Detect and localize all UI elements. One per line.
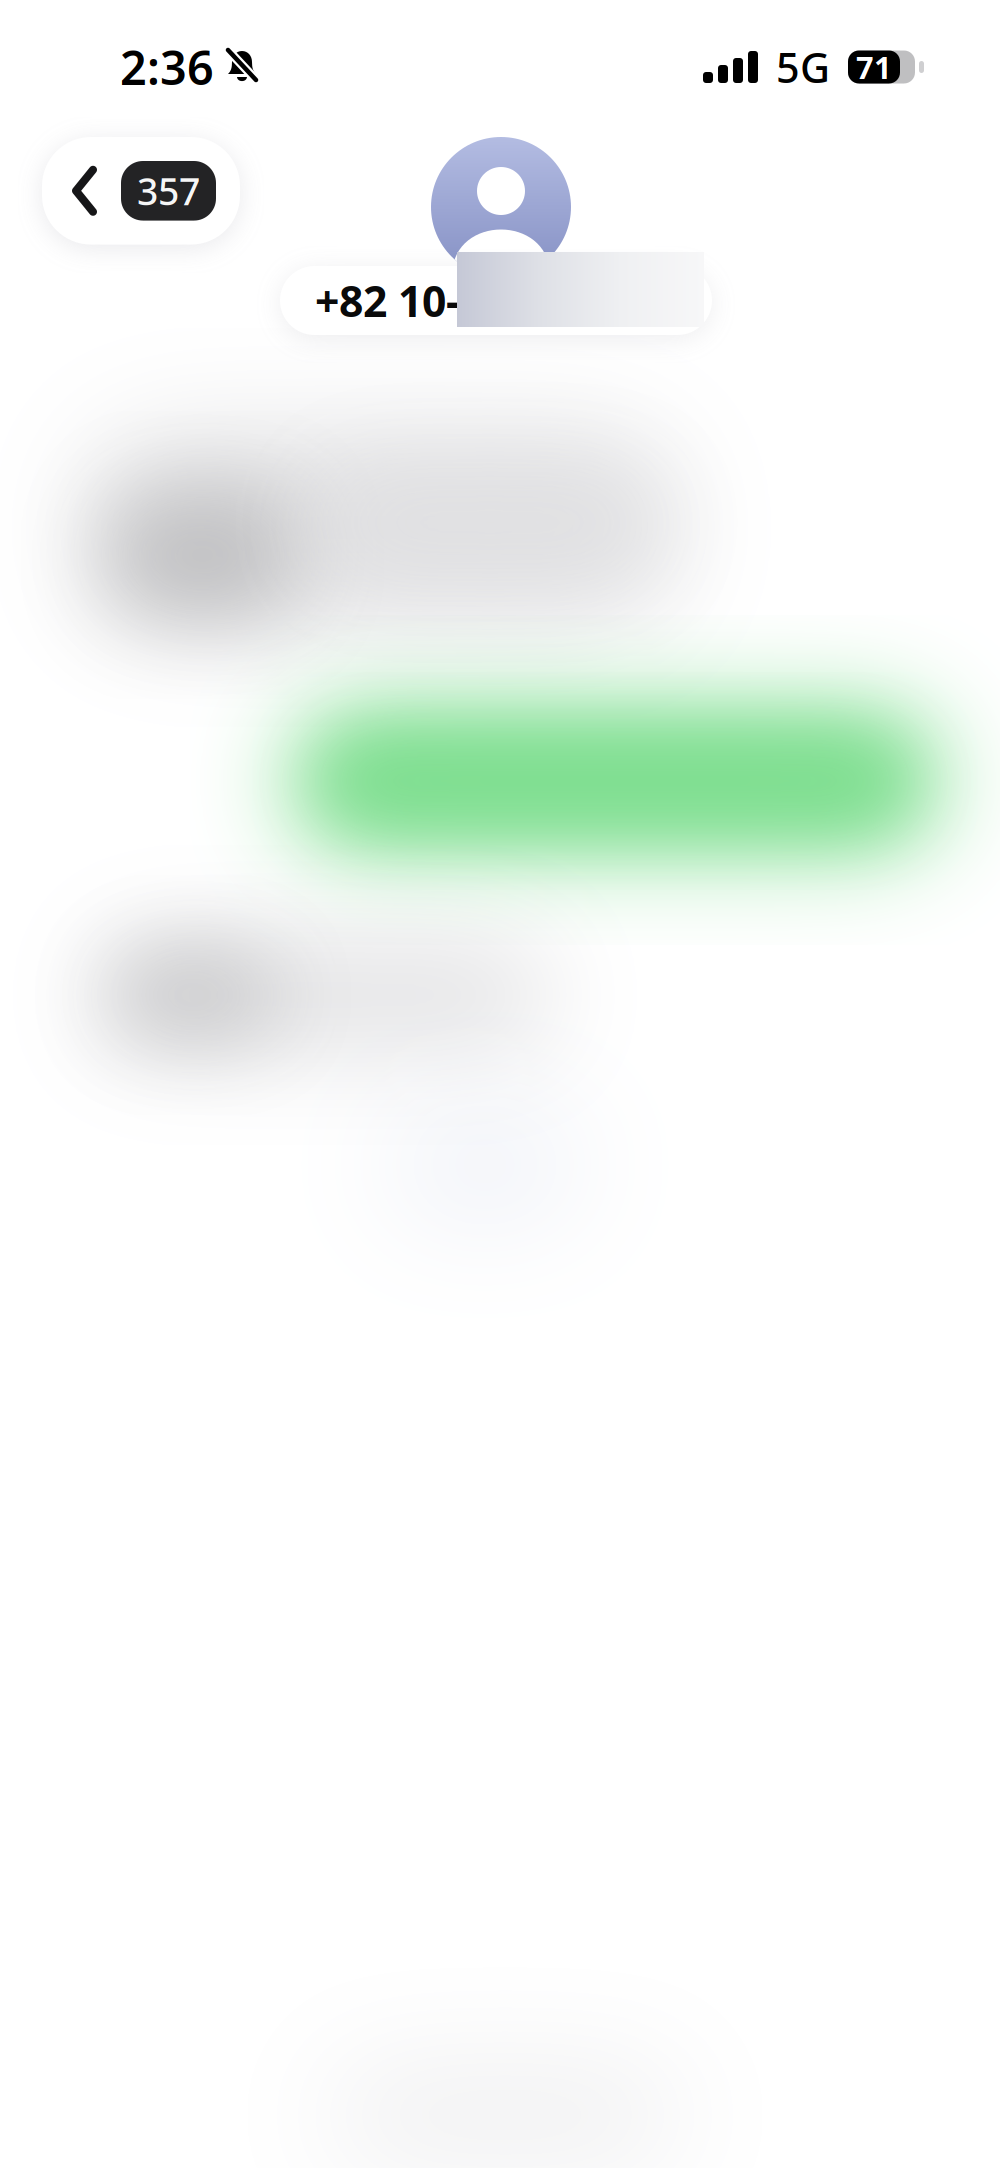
staticText: 2:36	[120, 36, 214, 98]
staticText: 71	[856, 47, 892, 87]
staticText: 5G	[776, 40, 830, 94]
button[interactable]: Conversation with +82 10 number	[280, 266, 712, 335]
staticText: +82 10-	[315, 272, 460, 329]
staticText: 357	[137, 166, 200, 216]
button[interactable]: Back to conversations, 357 unread	[42, 137, 240, 245]
